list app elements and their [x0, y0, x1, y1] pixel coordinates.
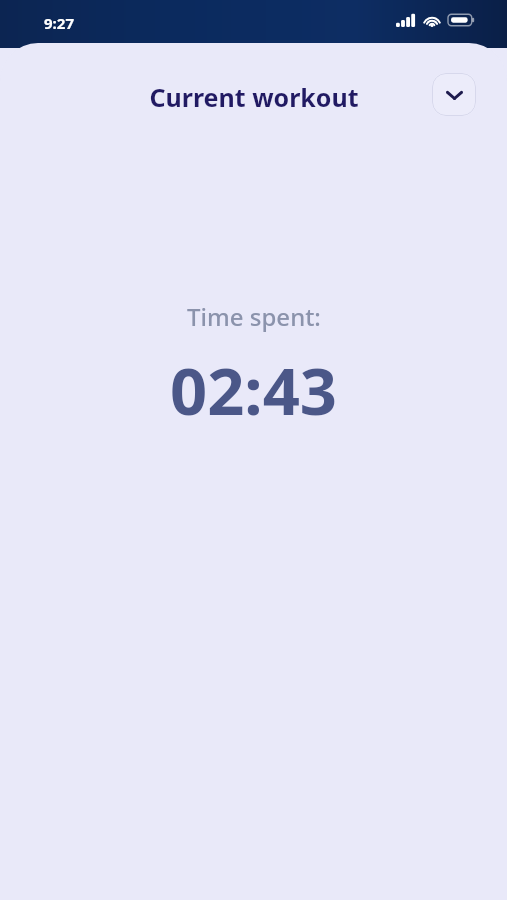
staticText: Time spent:: [187, 300, 321, 333]
button[interactable]: Collapse: [432, 73, 476, 116]
staticText: Current workout: [149, 80, 359, 114]
staticText: 02:43: [170, 346, 337, 435]
staticText: 9:27: [44, 13, 74, 33]
